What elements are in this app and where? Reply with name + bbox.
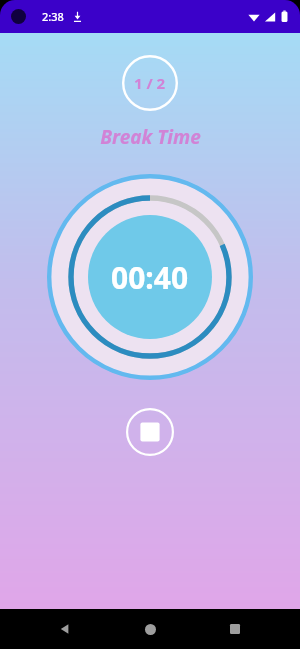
button[interactable]: Home	[130, 609, 170, 649]
staticText: 1 / 2	[134, 73, 166, 93]
button[interactable]: Recents	[215, 609, 255, 649]
staticText: 00:40	[111, 257, 189, 298]
button[interactable]: Stop	[126, 408, 174, 456]
button[interactable]: 1 / 2	[122, 55, 178, 111]
button[interactable]: Back	[45, 609, 85, 649]
staticText: Break Time	[100, 124, 201, 150]
staticText: 2:38	[42, 9, 64, 24]
